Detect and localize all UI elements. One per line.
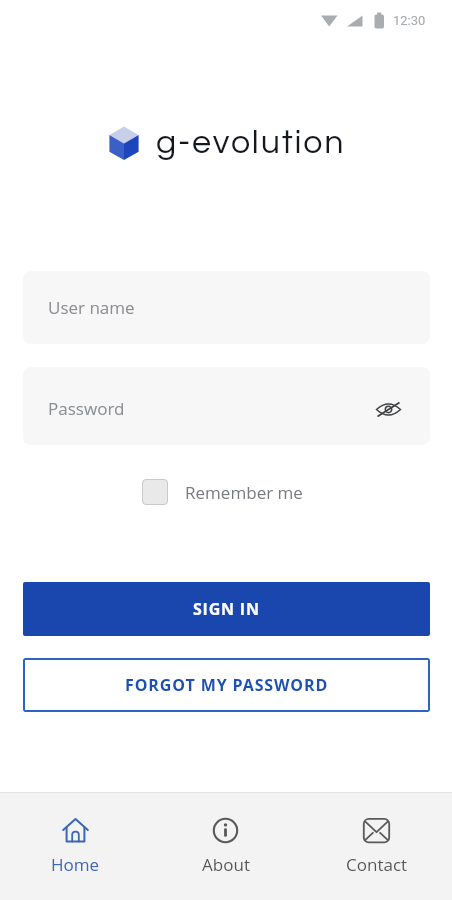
button[interactable] bbox=[375, 401, 402, 418]
staticText: g-evolution bbox=[156, 125, 346, 160]
button[interactable]: About bbox=[150, 793, 301, 900]
button[interactable]: Home bbox=[0, 793, 150, 900]
button[interactable]: Contact bbox=[301, 793, 452, 900]
staticText: Password bbox=[48, 397, 125, 420]
staticText: Home bbox=[51, 853, 100, 876]
staticText: Contact bbox=[346, 853, 407, 876]
button[interactable]: FORGOT MY PASSWORD bbox=[23, 658, 430, 712]
button[interactable]: Remember me bbox=[142, 479, 303, 505]
staticText: SIGN IN bbox=[193, 598, 260, 620]
button[interactable]: User name bbox=[23, 271, 430, 344]
staticText: FORGOT MY PASSWORD bbox=[125, 674, 329, 696]
staticText: User name bbox=[48, 296, 135, 319]
staticText: 12:30 bbox=[393, 13, 426, 28]
button[interactable]: Password bbox=[23, 367, 430, 445]
staticText: About bbox=[202, 853, 250, 876]
button[interactable]: SIGN IN bbox=[23, 582, 430, 636]
staticText: Remember me bbox=[185, 481, 303, 504]
